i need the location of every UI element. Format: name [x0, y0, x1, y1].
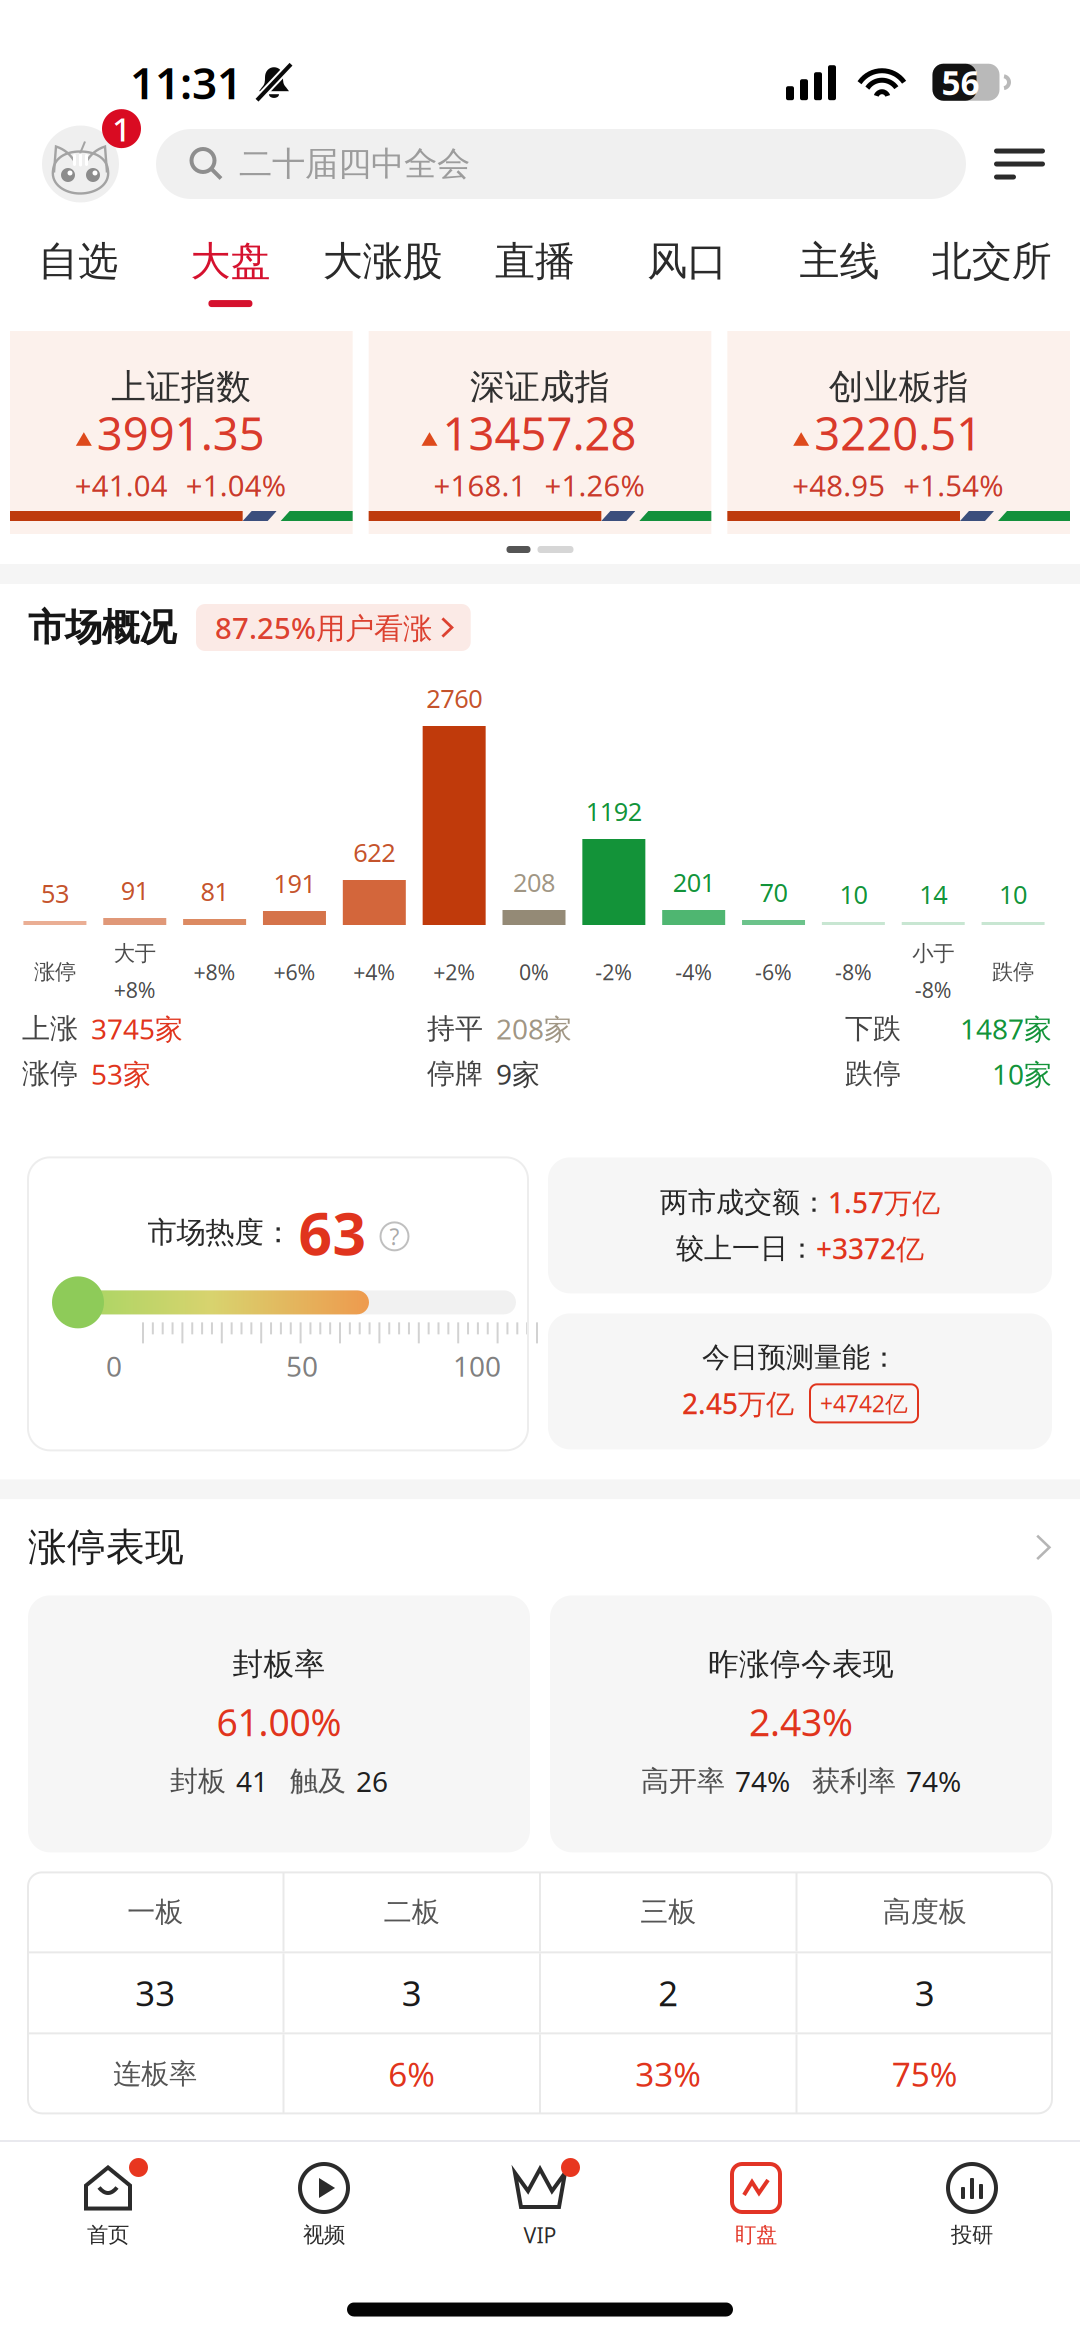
- staticText: -8%: [835, 958, 872, 986]
- staticText: +8%: [114, 975, 156, 1004]
- staticText: 208家: [496, 1010, 572, 1047]
- staticText: 91: [121, 873, 149, 907]
- button[interactable]: 风口: [611, 210, 763, 331]
- staticText: 涨停: [22, 1057, 78, 1091]
- button[interactable]: Menu: [966, 118, 1080, 210]
- staticText: 连板率: [113, 2057, 197, 2091]
- staticText: 1.57万亿: [828, 1184, 940, 1221]
- staticText: 2760: [426, 681, 482, 715]
- staticText: 6%: [388, 2052, 435, 2096]
- staticText: +2%: [433, 958, 475, 986]
- staticText: +3372亿: [816, 1230, 924, 1267]
- staticText: 2.43%: [749, 1697, 853, 1747]
- staticText: +4742亿: [820, 1388, 908, 1418]
- staticText: 63: [298, 1193, 366, 1271]
- staticText: 投研: [951, 2222, 993, 2248]
- staticText: 1192: [586, 794, 642, 828]
- staticText: 201: [673, 865, 715, 899]
- staticText: 74%: [735, 1763, 790, 1800]
- button[interactable]: 大盘: [154, 210, 307, 331]
- button[interactable]: 主线: [763, 210, 916, 331]
- staticText: 跌停: [845, 1057, 901, 1091]
- staticText: 1487家: [960, 1010, 1052, 1047]
- staticText: 触及: [290, 1764, 346, 1798]
- button[interactable]: Profile: [0, 118, 156, 210]
- staticText: +8%: [194, 958, 236, 986]
- staticText: 33%: [635, 2052, 701, 2096]
- staticText: 74%: [906, 1763, 961, 1800]
- button[interactable]: 上证指数: [10, 331, 353, 534]
- staticText: -4%: [675, 958, 712, 986]
- button[interactable]: 大涨股: [307, 210, 459, 331]
- staticText: 涨停表现: [28, 1524, 184, 1571]
- staticText: 主线: [800, 237, 880, 286]
- staticText: 10: [839, 877, 867, 911]
- staticText: 61.00%: [216, 1697, 341, 1747]
- staticText: 市场热度：: [147, 1214, 292, 1250]
- staticText: 3745家: [91, 1010, 183, 1047]
- staticText: 创业板指: [829, 366, 969, 408]
- button[interactable]: 深证成指: [369, 331, 711, 534]
- staticText: 53家: [91, 1055, 151, 1092]
- staticText: 26: [356, 1763, 388, 1800]
- button[interactable]: 视频: [216, 2142, 432, 2271]
- staticText: 100: [453, 1347, 501, 1385]
- staticText: 盯盘: [735, 2222, 777, 2248]
- staticText: 北交所: [932, 237, 1052, 286]
- staticText: +1.26%: [544, 465, 644, 504]
- staticText: 87.25%用户看涨: [215, 608, 432, 647]
- button[interactable]: 北交所: [916, 210, 1068, 331]
- staticText: 视频: [303, 2222, 345, 2248]
- button[interactable]: 87.25%用户看涨: [196, 604, 471, 651]
- staticText: 自选: [38, 237, 118, 286]
- button[interactable]: 直播: [459, 210, 611, 331]
- staticText: +48.95: [792, 465, 885, 504]
- staticText: 11:31: [130, 53, 242, 111]
- staticText: 昨涨停今表现: [708, 1645, 894, 1683]
- staticText: 上涨: [22, 1011, 78, 1046]
- button[interactable]: 投研: [864, 2142, 1080, 2271]
- staticText: 81: [201, 874, 229, 908]
- staticText: 191: [273, 866, 315, 900]
- staticText: -6%: [755, 958, 792, 986]
- button[interactable]: 二十届四中全会: [156, 129, 966, 199]
- button[interactable]: 盯盘: [648, 2142, 864, 2271]
- button[interactable]: 涨停表现: [0, 1499, 1080, 1595]
- staticText: 13457.28: [442, 403, 636, 463]
- staticText: 三板: [640, 1895, 696, 1929]
- button[interactable]: VIP: [432, 2142, 648, 2271]
- staticText: 3220.51: [814, 403, 982, 463]
- button[interactable]: 首页: [0, 2142, 216, 2271]
- staticText: 获利率: [812, 1764, 896, 1798]
- staticText: ?: [389, 1221, 399, 1251]
- staticText: -8%: [915, 975, 952, 1004]
- staticText: 二十届四中全会: [239, 143, 470, 184]
- staticText: 33: [135, 1970, 175, 2016]
- staticText: 持平: [427, 1011, 483, 1046]
- staticText: 封板: [170, 1764, 226, 1798]
- staticText: 大于: [114, 940, 156, 966]
- staticText: 0: [106, 1347, 122, 1385]
- staticText: +6%: [273, 958, 315, 986]
- staticText: 14: [919, 877, 947, 911]
- staticText: 10: [999, 877, 1027, 911]
- staticText: 大涨股: [323, 237, 443, 286]
- staticText: 深证成指: [470, 366, 610, 408]
- staticText: 50: [286, 1347, 318, 1385]
- staticText: 大盘: [190, 237, 270, 286]
- staticText: 3: [915, 1970, 935, 2016]
- button[interactable]: 创业板指: [727, 331, 1070, 534]
- staticText: 53: [41, 876, 69, 910]
- staticText: 70: [759, 875, 787, 909]
- staticText: 封板率: [232, 1645, 325, 1683]
- staticText: 9家: [496, 1055, 540, 1092]
- staticText: +168.1: [433, 465, 526, 504]
- staticText: 高度板: [883, 1895, 967, 1929]
- staticText: 3991.35: [97, 403, 265, 463]
- staticText: 较上一日：: [676, 1231, 816, 1266]
- button[interactable]: 自选: [2, 210, 154, 331]
- staticText: 1: [112, 106, 131, 151]
- staticText: 直播: [495, 237, 575, 286]
- staticText: 2.45万亿: [682, 1385, 794, 1422]
- staticText: 622: [353, 835, 395, 869]
